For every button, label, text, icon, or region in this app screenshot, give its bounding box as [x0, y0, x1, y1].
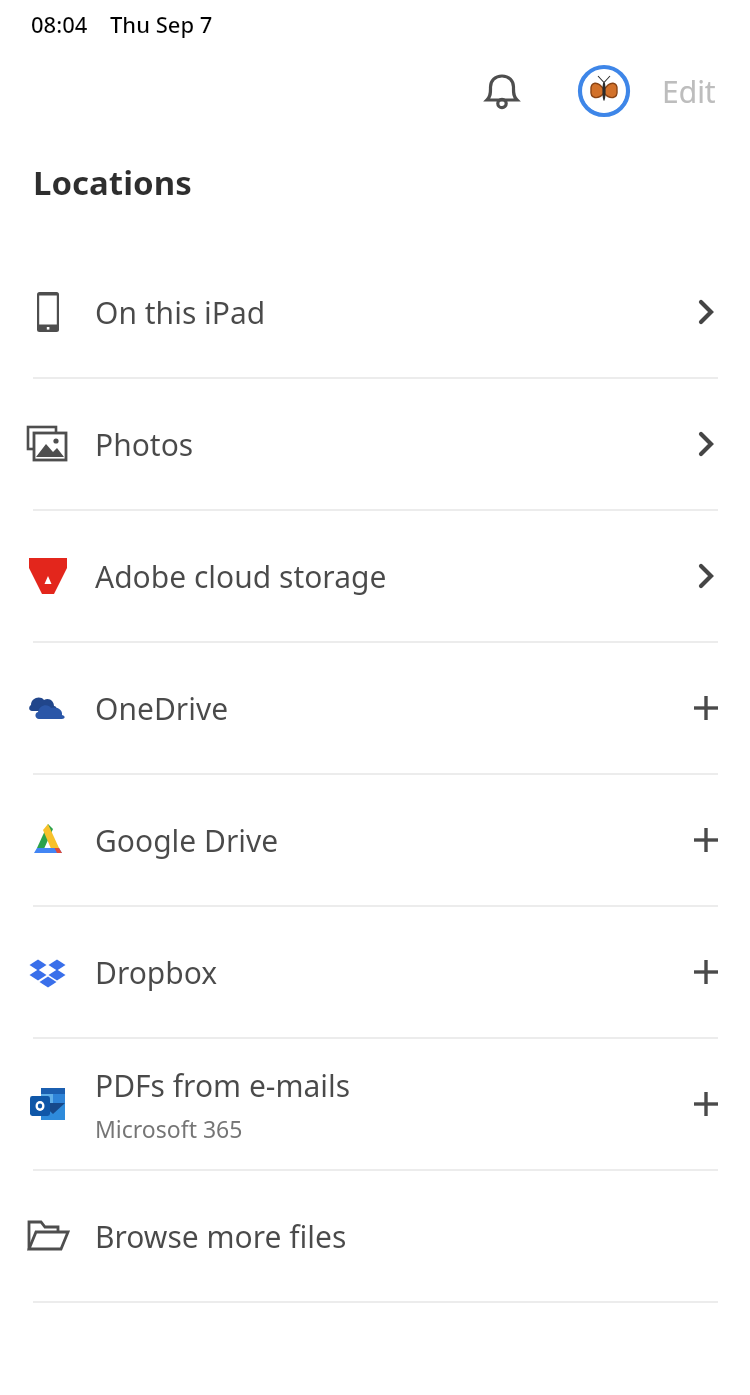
staticText: PDFs from e-mails	[95, 1065, 351, 1106]
button[interactable]: OneDrive	[0, 643, 750, 773]
button[interactable]: Google Drive	[0, 775, 750, 905]
button[interactable]: Browse more files	[0, 1171, 750, 1301]
button[interactable]: Notifications	[472, 61, 532, 121]
button[interactable]: Dropbox	[0, 907, 750, 1037]
button[interactable]: Adobe cloud storage	[0, 511, 750, 641]
staticText: Adobe cloud storage	[95, 556, 387, 597]
staticText: Microsoft 365	[95, 1113, 243, 1144]
button[interactable]: Edit	[656, 61, 722, 122]
staticText: Edit	[662, 71, 716, 112]
button[interactable]: PDFs from e-mails	[0, 1039, 750, 1169]
staticText: Google Drive	[95, 820, 279, 861]
staticText: On this iPad	[95, 292, 266, 333]
staticText: Browse more files	[95, 1216, 347, 1257]
staticText: Dropbox	[95, 952, 218, 993]
staticText: 08:04	[31, 9, 88, 39]
button[interactable]: On this iPad	[0, 247, 750, 377]
staticText: Thu Sep 7	[110, 9, 213, 39]
button[interactable]: Profile	[574, 61, 634, 121]
staticText: OneDrive	[95, 688, 229, 729]
staticText: Locations	[33, 160, 192, 205]
staticText: Photos	[95, 424, 194, 465]
button[interactable]: Photos	[0, 379, 750, 509]
